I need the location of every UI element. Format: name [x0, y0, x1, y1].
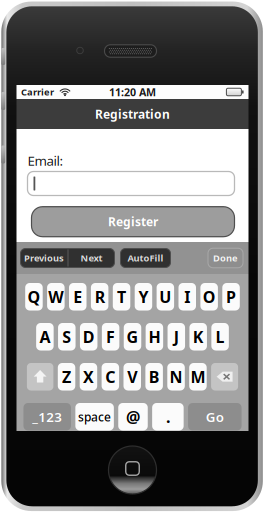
staticText: F [106, 326, 115, 347]
staticText: Z [62, 366, 71, 387]
staticText: R [95, 286, 105, 307]
staticText: J [174, 326, 179, 347]
button[interactable]: Z [58, 363, 75, 390]
button[interactable]: Y [135, 283, 152, 310]
button[interactable]: B [145, 363, 163, 390]
button[interactable]: _123 [23, 403, 71, 430]
staticText: W [48, 286, 63, 307]
button[interactable]: K [189, 323, 207, 350]
staticText: I [184, 286, 190, 307]
staticText: Q [27, 286, 40, 307]
button[interactable]: Next [68, 248, 114, 267]
staticText: Go [206, 408, 224, 426]
button[interactable]: H [146, 323, 163, 350]
button[interactable]: @ [118, 403, 148, 430]
staticText: space [78, 409, 111, 425]
staticText: C [105, 366, 115, 387]
button[interactable]: AutoFill [120, 248, 170, 267]
staticText: Register [108, 214, 158, 230]
staticText: 11:20 AM [109, 85, 156, 99]
button[interactable]: U [157, 283, 174, 310]
button[interactable]: Go [188, 403, 242, 430]
button[interactable]: R [91, 283, 108, 310]
staticText: N [170, 366, 183, 387]
button[interactable]: P [222, 283, 240, 310]
staticText: B [149, 366, 160, 387]
button[interactable]: . [152, 403, 184, 430]
button[interactable]: D [80, 323, 97, 350]
button[interactable]: Done [208, 248, 243, 268]
button[interactable]: Register [31, 207, 234, 237]
button[interactable]: Delete [211, 363, 238, 390]
staticText: Next [80, 252, 102, 264]
staticText: A [39, 326, 50, 347]
button[interactable]: O [200, 283, 218, 310]
staticText: @ [126, 406, 140, 427]
staticText: H [148, 326, 160, 347]
staticText: M [190, 366, 205, 387]
button[interactable]: I [178, 283, 196, 310]
button[interactable]: Previous [20, 248, 67, 267]
button[interactable]: T [113, 283, 130, 310]
button[interactable]: C [102, 363, 119, 390]
staticText: P [226, 286, 236, 307]
button[interactable]: space [75, 403, 114, 430]
staticText: Done [213, 252, 238, 264]
button[interactable]: Shift [27, 363, 53, 390]
staticText: T [117, 286, 126, 307]
button[interactable]: A [36, 323, 54, 350]
staticText: E [73, 286, 82, 307]
staticText: AutoFill [127, 252, 163, 264]
staticText: Previous [24, 252, 64, 264]
staticText: K [193, 326, 204, 347]
button[interactable]: S [58, 323, 76, 350]
button[interactable]: N [167, 363, 185, 390]
button[interactable]: X [80, 363, 97, 390]
button[interactable]: L [211, 323, 229, 350]
staticText: L [216, 326, 225, 347]
staticText: V [127, 366, 137, 387]
button[interactable]: V [123, 363, 141, 390]
button[interactable]: M [189, 363, 207, 390]
staticText: Y [138, 286, 148, 307]
staticText: D [83, 326, 95, 347]
staticText: Registration [95, 106, 170, 122]
staticText: Carrier [21, 86, 54, 98]
staticText: X [83, 366, 94, 387]
button[interactable]: J [168, 323, 185, 350]
button[interactable]: G [124, 323, 141, 350]
staticText: O [203, 286, 216, 307]
button[interactable]: Q [25, 283, 43, 310]
button[interactable]: W [47, 283, 65, 310]
staticText: _123 [32, 408, 62, 426]
staticText: . [166, 406, 170, 427]
staticText: G [126, 326, 138, 347]
staticText: U [159, 286, 171, 307]
button[interactable]: F [102, 323, 119, 350]
button[interactable]: E [69, 283, 86, 310]
staticText: Email: [27, 152, 63, 169]
staticText: S [62, 326, 71, 347]
